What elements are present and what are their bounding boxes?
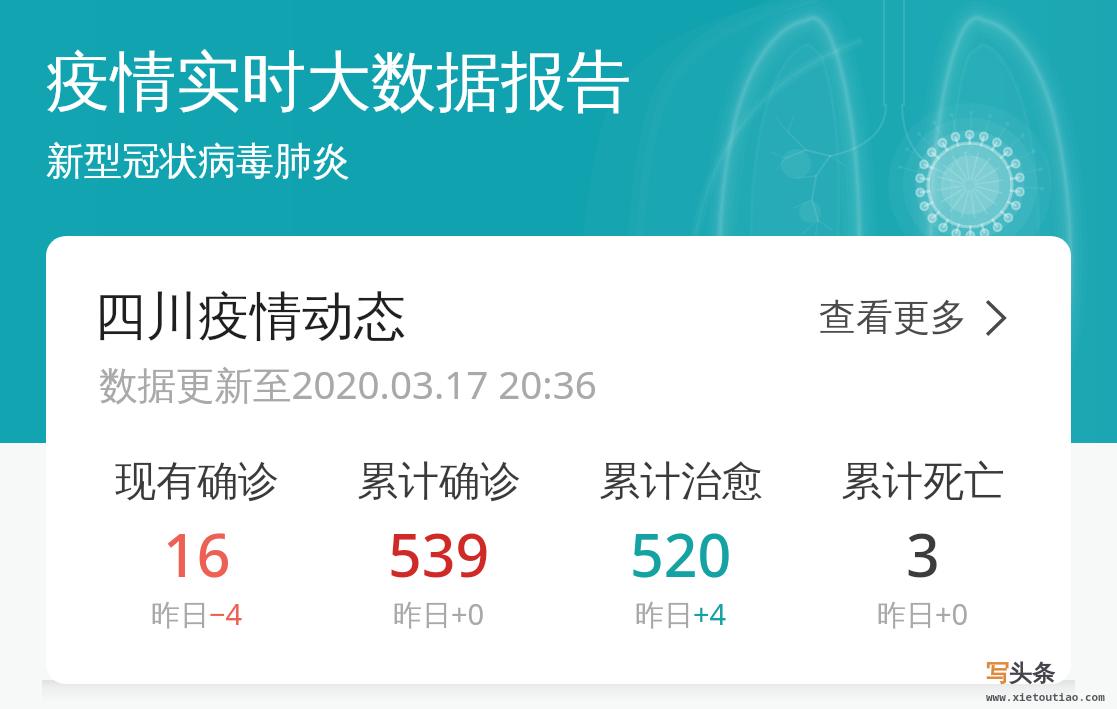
staticText: 昨日+0 [393, 594, 485, 634]
staticText: 累计治愈 [599, 456, 763, 508]
staticText: 累计死亡 [841, 456, 1005, 508]
button[interactable]: 累计确诊 [318, 456, 560, 634]
staticText: 数据更新至2020.03.17 20:36 [99, 358, 597, 411]
staticText: 昨日−4 [151, 594, 243, 634]
staticText: 昨日+4 [635, 594, 727, 634]
button[interactable]: 查看更多 [813, 286, 1012, 349]
button[interactable]: 累计治愈 [560, 456, 802, 634]
staticText: 539 [388, 514, 490, 594]
button[interactable]: 累计死亡 [802, 456, 1044, 634]
staticText: 疫情实时大数据报告 [46, 41, 631, 123]
staticText: 四川疫情动态 [94, 284, 406, 350]
staticText: 昨日+0 [877, 594, 969, 634]
staticText: www.xietoutiao.com [986, 689, 1105, 704]
staticText: 520 [630, 514, 732, 594]
staticText: 16 [163, 514, 231, 594]
other: 查看更多 [985, 299, 1006, 337]
button[interactable]: 现有确诊 [75, 456, 318, 634]
staticText: 写头条 [986, 659, 1055, 688]
staticText: 3 [906, 514, 940, 594]
staticText: 新型冠状病毒肺炎 [46, 137, 350, 185]
staticText: 累计确诊 [357, 456, 521, 508]
staticText: 查看更多 [819, 294, 967, 341]
staticText: 现有确诊 [115, 456, 279, 508]
